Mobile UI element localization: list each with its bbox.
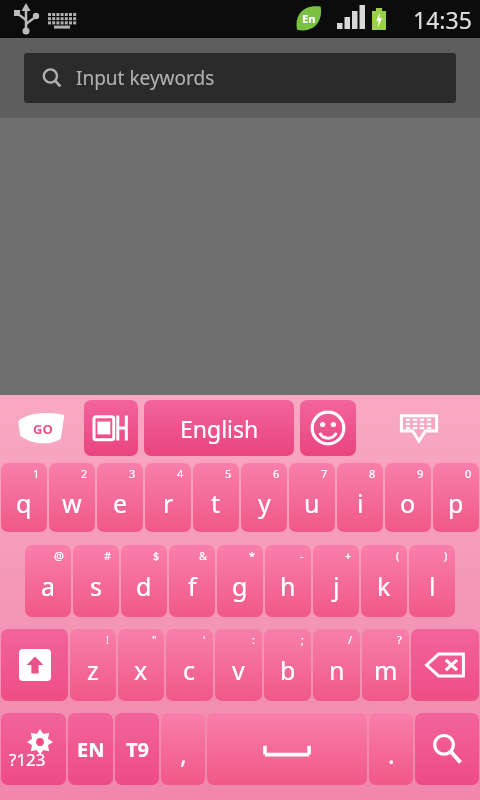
staticText: ; bbox=[301, 632, 304, 647]
button[interactable]: T9 bbox=[115, 713, 159, 785]
staticText: " bbox=[152, 632, 157, 647]
button[interactable]: Search bbox=[415, 713, 479, 785]
staticText: + bbox=[345, 548, 352, 563]
button[interactable]: English bbox=[144, 400, 294, 456]
staticText: * bbox=[249, 548, 256, 563]
button[interactable]: + bbox=[313, 545, 359, 617]
button[interactable]: . bbox=[369, 713, 413, 785]
staticText: En bbox=[302, 11, 316, 26]
button[interactable]: 6 bbox=[241, 463, 287, 532]
button[interactable]: / bbox=[313, 629, 360, 701]
staticText: q bbox=[16, 486, 32, 520]
button[interactable]: Backspace bbox=[411, 629, 479, 701]
staticText: 0 bbox=[465, 466, 472, 481]
staticText: t bbox=[211, 486, 221, 520]
button[interactable]: 3 bbox=[97, 463, 143, 532]
staticText: & bbox=[199, 548, 208, 563]
button[interactable]: 5 bbox=[193, 463, 239, 532]
staticText: y bbox=[258, 486, 271, 520]
staticText: h bbox=[280, 569, 296, 603]
staticText: x bbox=[134, 653, 148, 687]
button[interactable]: ; bbox=[264, 629, 311, 701]
staticText: o bbox=[400, 486, 416, 520]
button[interactable]: " bbox=[118, 629, 164, 701]
staticText: c bbox=[183, 653, 196, 687]
staticText: @ bbox=[54, 548, 64, 563]
button[interactable]: Space bbox=[207, 713, 367, 785]
button[interactable]: Hide keyboard bbox=[362, 395, 476, 461]
staticText: m bbox=[374, 653, 398, 687]
button[interactable]: - bbox=[265, 545, 311, 617]
button[interactable]: Shift bbox=[1, 629, 68, 701]
staticText: e bbox=[113, 486, 128, 520]
button[interactable]: ) bbox=[409, 545, 455, 617]
button[interactable]: , bbox=[161, 713, 205, 785]
staticText: l bbox=[429, 569, 436, 603]
button[interactable]: 8 bbox=[337, 463, 383, 532]
staticText: GO bbox=[33, 420, 53, 438]
staticText: ? bbox=[397, 632, 402, 647]
staticText: v bbox=[232, 653, 245, 687]
staticText: . bbox=[388, 737, 395, 771]
staticText: ) bbox=[444, 548, 448, 563]
button[interactable]: 0 bbox=[433, 463, 479, 532]
staticText: d bbox=[136, 569, 152, 603]
button[interactable]: ? bbox=[362, 629, 409, 701]
staticText: s bbox=[90, 569, 102, 603]
staticText: English bbox=[180, 413, 259, 444]
staticText: ! bbox=[106, 632, 109, 647]
staticText: - bbox=[300, 548, 304, 563]
staticText: T9 bbox=[126, 736, 149, 763]
staticText: k bbox=[377, 569, 391, 603]
staticText: 7 bbox=[321, 466, 328, 481]
staticText: , bbox=[180, 737, 187, 771]
button[interactable]: Switch keyboard bbox=[84, 400, 138, 456]
button[interactable]: GO Keyboard bbox=[4, 395, 78, 461]
staticText: 5 bbox=[225, 466, 232, 481]
staticText: 1 bbox=[33, 466, 40, 481]
staticText: f bbox=[188, 569, 197, 603]
staticText: r bbox=[163, 486, 174, 520]
staticText: ( bbox=[396, 548, 400, 563]
staticText: u bbox=[304, 486, 320, 520]
button[interactable]: 9 bbox=[385, 463, 431, 532]
button[interactable]: @ bbox=[25, 545, 71, 617]
staticText: i bbox=[357, 486, 364, 520]
button[interactable]: # bbox=[73, 545, 119, 617]
button[interactable]: 7 bbox=[289, 463, 335, 532]
button[interactable]: Input keywords bbox=[24, 53, 456, 103]
staticText: : bbox=[252, 632, 255, 647]
staticText: Input keywords bbox=[76, 65, 215, 91]
staticText: 4 bbox=[177, 466, 184, 481]
button[interactable]: Emoji bbox=[300, 400, 356, 456]
staticText: ?123 bbox=[9, 748, 46, 771]
button[interactable]: ( bbox=[361, 545, 407, 617]
staticText: z bbox=[87, 653, 99, 687]
button[interactable]: EN bbox=[68, 713, 113, 785]
button[interactable]: & bbox=[169, 545, 215, 617]
button[interactable]: ! bbox=[70, 629, 116, 701]
button[interactable]: 2 bbox=[49, 463, 95, 532]
staticText: 9 bbox=[417, 466, 424, 481]
button[interactable]: 4 bbox=[145, 463, 191, 532]
staticText: 6 bbox=[273, 466, 280, 481]
button[interactable]: 1 bbox=[1, 463, 47, 532]
button[interactable]: $ bbox=[121, 545, 167, 617]
staticText: 2 bbox=[81, 466, 88, 481]
button[interactable]: Settings and symbols bbox=[1, 713, 66, 785]
staticText: p bbox=[448, 486, 464, 520]
staticText: a bbox=[41, 569, 56, 603]
button[interactable]: * bbox=[217, 545, 263, 617]
staticText: EN bbox=[77, 736, 105, 763]
staticText: w bbox=[62, 486, 82, 520]
staticText: j bbox=[333, 569, 340, 603]
staticText: / bbox=[348, 632, 353, 647]
staticText: $ bbox=[153, 548, 160, 563]
button[interactable]: : bbox=[215, 629, 262, 701]
staticText: g bbox=[232, 569, 248, 603]
staticText: ' bbox=[203, 632, 206, 647]
button[interactable]: ' bbox=[166, 629, 213, 701]
staticText: 8 bbox=[369, 466, 376, 481]
staticText: 14:35 bbox=[413, 4, 472, 35]
staticText: 3 bbox=[129, 466, 136, 481]
